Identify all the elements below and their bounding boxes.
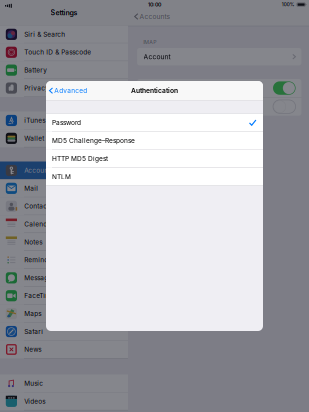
button[interactable]: Mail on xyxy=(273,81,296,95)
staticText: Accounts & Passwords xyxy=(24,166,93,174)
staticText: Settings xyxy=(50,8,77,17)
staticText: MD5 Challenge–Response xyxy=(52,137,135,145)
staticText: Safari xyxy=(24,328,43,335)
staticText: Siri & Search xyxy=(24,30,65,38)
button[interactable]: NTLM xyxy=(46,168,263,185)
button[interactable]: Accounts xyxy=(134,10,171,23)
staticText: Mail xyxy=(143,84,157,92)
button[interactable]: Music xyxy=(0,374,128,392)
staticText: Account xyxy=(143,53,170,61)
staticText: Mail xyxy=(24,184,38,192)
button[interactable]: Privacy xyxy=(0,79,128,97)
button[interactable]: iTunes & App Store xyxy=(0,111,128,129)
button[interactable]: Reminders xyxy=(0,251,128,269)
staticText: FaceTime xyxy=(24,292,55,300)
button[interactable]: Safari xyxy=(0,323,128,340)
button[interactable]: Wallet & Apple Pay xyxy=(0,129,128,147)
staticText: Privacy xyxy=(24,84,49,92)
staticText: IMAP xyxy=(143,39,156,45)
staticText: Videos xyxy=(24,397,45,405)
staticText: NTLM xyxy=(52,173,71,181)
staticText: Touch ID & Passcode xyxy=(24,48,91,56)
staticText: Maps xyxy=(24,310,41,317)
staticText: Music xyxy=(24,379,43,387)
staticText: HTTP MD5 Digest xyxy=(52,155,108,163)
staticText: Messages xyxy=(24,274,55,282)
button[interactable]: HTTP MD5 Digest xyxy=(46,150,263,167)
staticText: Reminders xyxy=(24,256,57,264)
staticText: Password xyxy=(52,119,81,127)
button[interactable]: News xyxy=(0,340,128,358)
button[interactable]: FaceTime xyxy=(0,287,128,305)
staticText: News xyxy=(24,345,41,353)
button[interactable]: Account xyxy=(137,48,301,65)
button[interactable]: Contacts xyxy=(0,197,128,215)
staticText: Calendar xyxy=(24,220,53,228)
button[interactable]: Accounts & Passwords xyxy=(0,161,128,179)
button[interactable]: Battery xyxy=(0,61,128,79)
staticText: Battery xyxy=(24,66,47,74)
staticText: Wallet & Apple Pay xyxy=(24,134,84,142)
button[interactable]: Advanced xyxy=(49,84,87,98)
button[interactable]: Notes xyxy=(0,233,128,251)
button[interactable]: Notes off xyxy=(273,100,296,113)
staticText: iTunes & App Store xyxy=(24,116,83,124)
staticText: Notes xyxy=(24,238,42,246)
button[interactable]: Calendar xyxy=(0,215,128,233)
staticText: Advanced xyxy=(54,87,87,95)
button[interactable]: Messages xyxy=(0,269,128,287)
button[interactable]: Mail xyxy=(0,179,128,197)
button[interactable]: Touch ID & Passcode xyxy=(0,43,128,61)
button[interactable]: Password xyxy=(46,114,263,131)
button[interactable]: Videos xyxy=(0,392,128,410)
button[interactable]: Maps xyxy=(0,305,128,323)
button[interactable]: Siri & Search xyxy=(0,25,128,43)
button[interactable]: MD5 Challenge–Response xyxy=(46,132,263,149)
staticText: Authentication xyxy=(131,87,178,95)
staticText: 10:00 xyxy=(148,1,161,8)
staticText: Accounts xyxy=(139,12,170,21)
staticText: Contacts xyxy=(24,202,52,210)
staticText: 100% xyxy=(282,2,295,7)
